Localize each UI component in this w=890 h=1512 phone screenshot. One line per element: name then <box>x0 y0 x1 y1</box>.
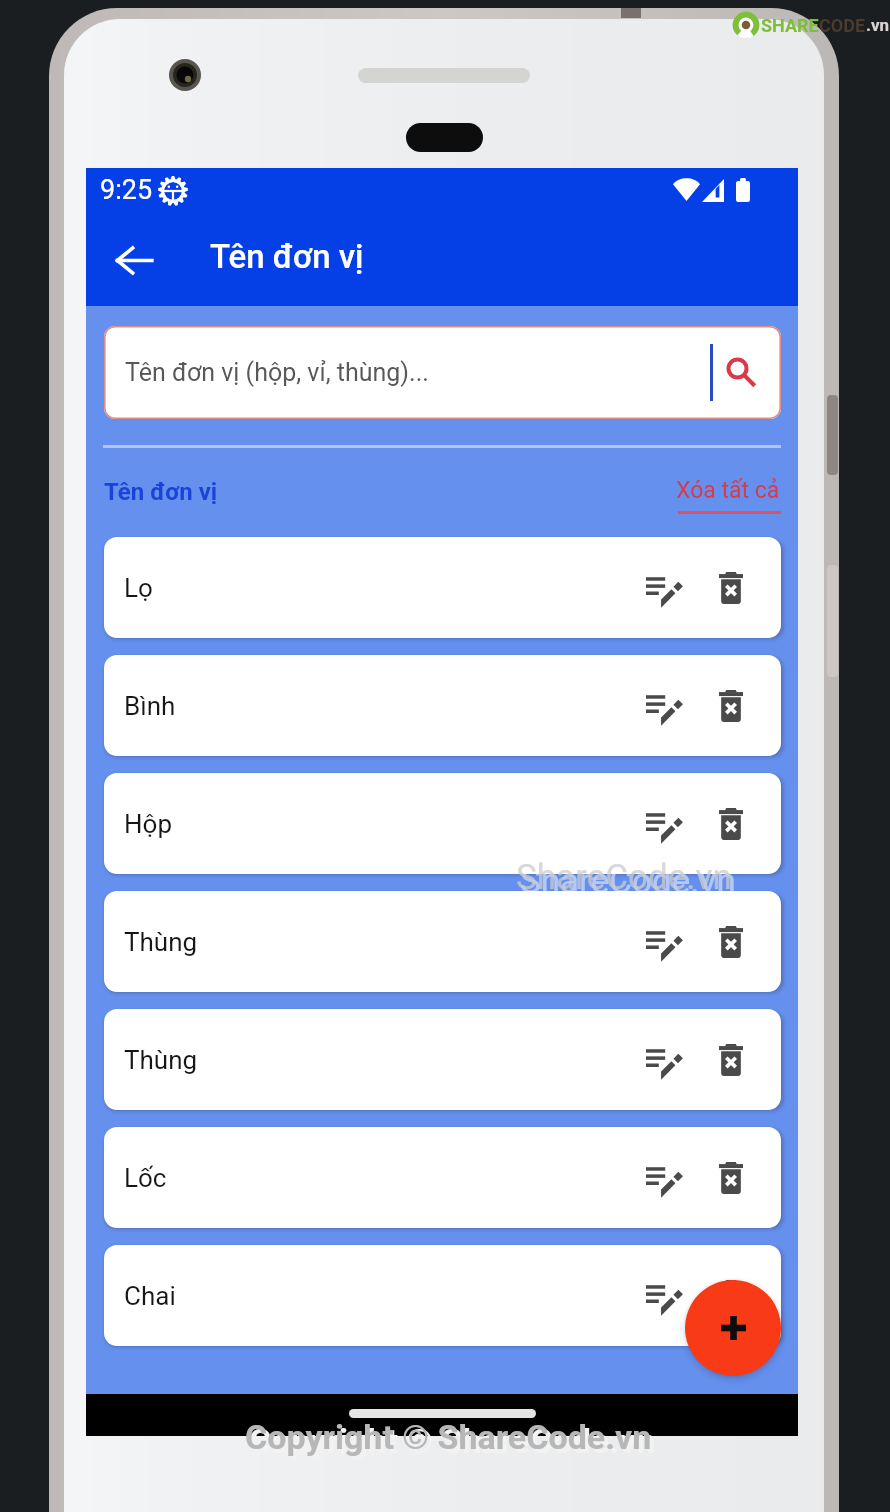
staticText: Tên đơn vị <box>210 237 364 276</box>
button[interactable]: Delete <box>697 1144 764 1211</box>
button[interactable]: Tên đơn vị <box>104 478 220 518</box>
staticText: Copyright © ShareCode.vn <box>245 1417 652 1457</box>
staticText: Copyright © ShareCode.vn <box>249 1421 656 1461</box>
staticText: Tên đơn vị <box>104 478 218 506</box>
button[interactable]: Thùng <box>104 1009 781 1110</box>
button[interactable]: Lọ <box>104 537 781 638</box>
button[interactable]: Lốc <box>104 1127 781 1228</box>
button[interactable]: Hộp <box>104 773 781 874</box>
button[interactable]: Back <box>105 231 163 289</box>
button[interactable]: Delete <box>697 1262 764 1329</box>
staticText: Thùng <box>124 927 198 957</box>
staticText: SHARE <box>761 15 819 36</box>
button[interactable]: Edit <box>628 672 695 739</box>
staticText: Lọ <box>124 573 153 603</box>
button[interactable]: Delete <box>697 1026 764 1093</box>
button[interactable]: Xóa tất cả <box>674 477 781 523</box>
button[interactable]: Thùng <box>104 891 781 992</box>
staticText: Thùng <box>124 1045 198 1075</box>
button[interactable]: Delete <box>697 554 764 621</box>
staticText: 9:25 <box>100 174 153 206</box>
button[interactable]: Tên đơn vị (hộp, vỉ, thùng)... <box>104 326 781 419</box>
staticText: Xóa tất cả <box>676 477 780 504</box>
staticText: Hộp <box>124 809 172 839</box>
button[interactable]: Edit <box>628 790 695 857</box>
button[interactable]: Edit <box>628 908 695 975</box>
button[interactable]: Bình <box>104 655 781 756</box>
staticText: ShareCode.vn <box>516 857 732 898</box>
button[interactable]: Search <box>713 326 781 419</box>
staticText: Bình <box>124 691 176 721</box>
button[interactable]: Edit <box>628 1144 695 1211</box>
staticText: CODE <box>819 15 866 36</box>
button[interactable]: Edit <box>628 1262 695 1329</box>
button[interactable]: Edit <box>628 1026 695 1093</box>
button[interactable]: Delete <box>697 908 764 975</box>
button[interactable]: Add new unit <box>685 1280 781 1376</box>
button[interactable]: Chai <box>104 1245 781 1346</box>
staticText: Chai <box>124 1281 176 1311</box>
staticText: .vn <box>866 15 890 35</box>
button[interactable]: Delete <box>697 672 764 739</box>
staticText: Tên đơn vị (hộp, vỉ, thùng)... <box>125 358 429 387</box>
staticText: ShareCode.vn <box>520 861 736 902</box>
button[interactable]: Delete <box>697 790 764 857</box>
button[interactable]: Edit <box>628 554 695 621</box>
staticText: Lốc <box>124 1163 167 1193</box>
